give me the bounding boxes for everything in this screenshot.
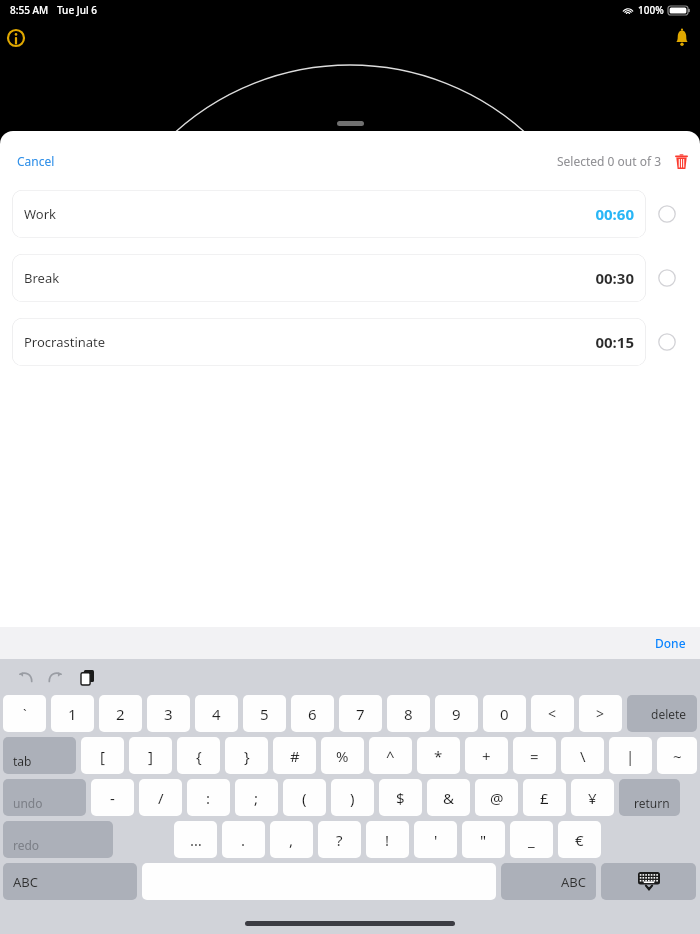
staticText: 6 — [308, 704, 317, 724]
staticText: 8 — [404, 704, 413, 724]
staticText: ) — [350, 788, 355, 808]
button[interactable]: . — [222, 821, 265, 858]
button[interactable]: 7 — [339, 695, 382, 732]
button[interactable]: Undo — [12, 664, 38, 690]
button[interactable]: delete — [627, 695, 697, 732]
staticText: 00:30 — [595, 268, 634, 288]
button[interactable]: Hide keyboard — [601, 863, 696, 900]
staticText: £ — [540, 788, 549, 808]
button[interactable]: < — [531, 695, 574, 732]
button[interactable]: 0 — [483, 695, 526, 732]
button[interactable]: 2 — [99, 695, 142, 732]
staticText: 3 — [164, 704, 173, 724]
staticText: ABC — [561, 873, 586, 891]
button[interactable]: Done — [647, 630, 694, 656]
staticText: Procrastinate — [24, 333, 106, 351]
staticText: & — [443, 788, 454, 808]
staticText: Cancel — [17, 153, 55, 169]
button[interactable]: redo — [3, 821, 113, 858]
button[interactable]: £ — [523, 779, 566, 816]
staticText: ( — [302, 788, 307, 808]
button[interactable]: [ — [81, 737, 124, 774]
staticText: ` — [23, 705, 27, 723]
staticText: 5 — [260, 704, 269, 724]
button[interactable]: Break — [12, 254, 646, 302]
button[interactable]: Delete — [670, 150, 692, 172]
button[interactable]: return — [619, 779, 680, 816]
button[interactable]: ' — [414, 821, 457, 858]
button[interactable]: 4 — [195, 695, 238, 732]
button[interactable]: 3 — [147, 695, 190, 732]
staticText: return — [634, 795, 670, 811]
staticText: _ — [528, 830, 535, 850]
button[interactable]: \ — [561, 737, 604, 774]
button[interactable]: Info — [7, 29, 25, 47]
button[interactable]: Procrastinate — [12, 318, 646, 366]
button[interactable]: ] — [129, 737, 172, 774]
staticText: 4 — [212, 704, 221, 724]
staticText: , — [289, 830, 294, 850]
button[interactable]: ^ — [369, 737, 412, 774]
button[interactable]: Select Procrastinate — [654, 329, 680, 355]
button[interactable]: ¥ — [571, 779, 614, 816]
button[interactable]: + — [465, 737, 508, 774]
staticText: [ — [100, 746, 105, 766]
button[interactable]: ) — [331, 779, 374, 816]
button[interactable]: ~ — [657, 737, 697, 774]
staticText: \ — [580, 746, 586, 766]
button[interactable]: 8 — [387, 695, 430, 732]
button[interactable]: , — [270, 821, 313, 858]
button[interactable]: ? — [318, 821, 361, 858]
staticText: > — [596, 704, 605, 723]
button[interactable]: = — [513, 737, 556, 774]
button[interactable]: ( — [283, 779, 326, 816]
button[interactable]: _ — [510, 821, 553, 858]
button[interactable]: > — [579, 695, 622, 732]
staticText: % — [336, 746, 349, 766]
button[interactable]: 5 — [243, 695, 286, 732]
staticText: - — [110, 788, 115, 808]
button[interactable]: ; — [235, 779, 278, 816]
button[interactable]: : — [187, 779, 230, 816]
button[interactable]: @ — [475, 779, 518, 816]
button[interactable]: Paste — [74, 664, 100, 690]
button[interactable]: $ — [379, 779, 422, 816]
staticText: redo — [13, 837, 40, 853]
button[interactable]: Select Break — [654, 265, 680, 291]
button[interactable]: 1 — [51, 695, 94, 732]
staticText: < — [548, 704, 557, 723]
button[interactable]: … — [174, 821, 217, 858]
button[interactable]: } — [225, 737, 268, 774]
button[interactable]: ! — [366, 821, 409, 858]
staticText: 0 — [500, 704, 509, 724]
button[interactable]: & — [427, 779, 470, 816]
button[interactable]: / — [139, 779, 182, 816]
button[interactable]: ABC — [501, 863, 596, 900]
staticText: delete — [651, 706, 687, 722]
button[interactable]: tab — [3, 737, 76, 774]
staticText: ] — [148, 746, 153, 766]
button[interactable]: { — [177, 737, 220, 774]
button[interactable]: Work — [12, 190, 646, 238]
button[interactable]: | — [609, 737, 652, 774]
button[interactable]: - — [91, 779, 134, 816]
button[interactable]: % — [321, 737, 364, 774]
button[interactable]: 6 — [291, 695, 334, 732]
button[interactable]: 9 — [435, 695, 478, 732]
button[interactable]: * — [417, 737, 460, 774]
button[interactable]: Notifications — [672, 28, 692, 48]
staticText: * — [434, 746, 443, 766]
button[interactable]: undo — [3, 779, 86, 816]
button[interactable]: # — [273, 737, 316, 774]
staticText: € — [575, 830, 584, 850]
button[interactable]: ABC — [3, 863, 137, 900]
button[interactable]: Select Work — [654, 201, 680, 227]
button[interactable]: Cancel — [8, 147, 64, 175]
staticText: 7 — [356, 704, 365, 724]
button[interactable]: ` — [3, 695, 46, 732]
button[interactable]: Redo — [43, 664, 69, 690]
staticText: ABC — [13, 873, 38, 891]
button[interactable]: " — [462, 821, 505, 858]
button[interactable]: € — [558, 821, 601, 858]
